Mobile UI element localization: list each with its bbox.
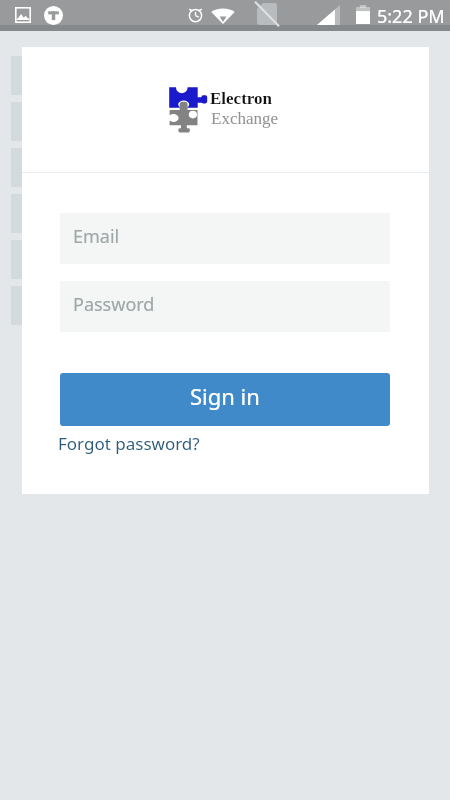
other: Wi-Fi connected xyxy=(211,7,235,24)
other: Battery xyxy=(356,5,370,24)
other: Tumblr notification xyxy=(44,6,63,25)
staticText: Sign in xyxy=(190,381,260,411)
button[interactable]: Password xyxy=(60,281,390,332)
staticText: Forgot password? xyxy=(58,432,200,455)
staticText: Exchange xyxy=(211,109,279,128)
other: Alarm set xyxy=(187,6,204,23)
other: No SIM card xyxy=(257,3,277,25)
button[interactable]: Email xyxy=(60,213,390,264)
button[interactable]: Sign in xyxy=(60,373,390,426)
staticText: Email xyxy=(73,224,120,249)
other: Electron Exchange logo xyxy=(169,86,209,134)
button[interactable]: Forgot password? xyxy=(58,432,200,455)
other: Mobile signal xyxy=(317,5,340,25)
other: Screenshot captured xyxy=(15,7,31,23)
staticText: Password xyxy=(73,292,155,317)
staticText: Electron xyxy=(210,89,273,108)
staticText: 5:22 PM xyxy=(377,4,445,29)
